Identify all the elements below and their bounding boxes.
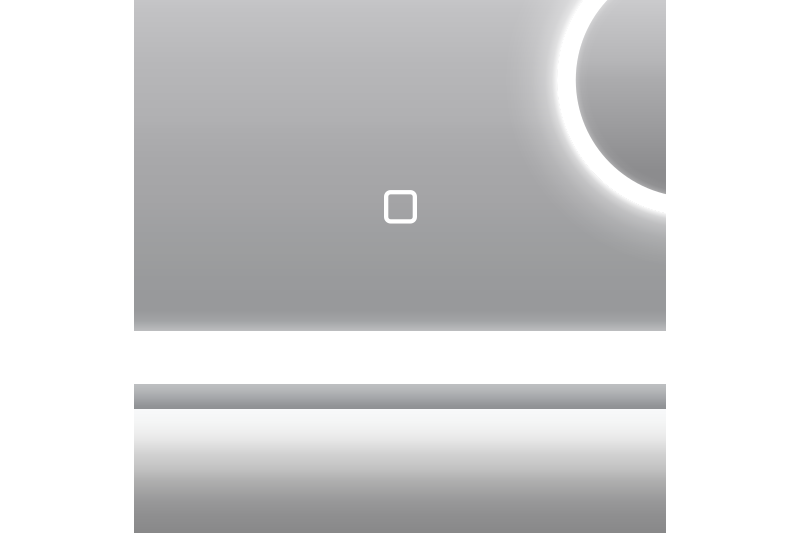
- button[interactable]: Touch sensor: [384, 190, 417, 224]
